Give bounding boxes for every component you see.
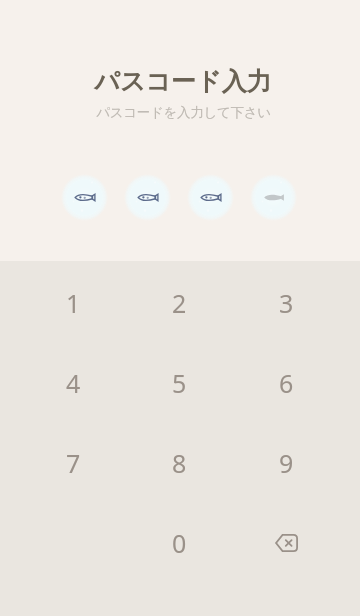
staticText: 6	[279, 366, 294, 400]
staticText: パスコード入力	[94, 66, 272, 97]
button[interactable]: 1	[20, 263, 126, 343]
staticText: 2	[172, 286, 187, 320]
button[interactable]: 3	[233, 263, 340, 343]
button[interactable]: 6	[233, 343, 340, 423]
button[interactable]: 5	[126, 343, 233, 423]
button[interactable]: 0	[126, 503, 233, 583]
button[interactable]: 2	[126, 263, 233, 343]
staticText: 3	[279, 286, 294, 320]
button[interactable]: 7	[20, 423, 126, 503]
staticText: 5	[172, 366, 187, 400]
button[interactable]: 8	[126, 423, 233, 503]
staticText: 7	[66, 446, 81, 480]
staticText: 4	[66, 366, 81, 400]
staticText: パスコードを入力して下さい	[96, 104, 271, 121]
staticText: 9	[279, 446, 294, 480]
button[interactable]: Delete	[233, 503, 340, 583]
button[interactable]: 9	[233, 423, 340, 503]
staticText: 8	[172, 446, 187, 480]
staticText: 1	[66, 286, 81, 320]
button[interactable]: 4	[20, 343, 126, 423]
staticText: 0	[172, 526, 187, 560]
